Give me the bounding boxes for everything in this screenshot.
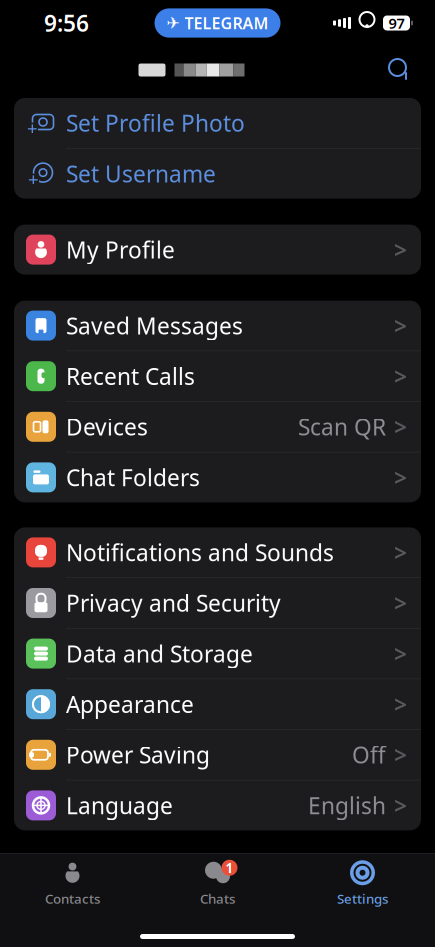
staticText: + [28,167,39,191]
staticText: 1 [225,859,233,877]
staticText: Settings [337,890,388,907]
button[interactable]: Privacy and Security [14,578,421,629]
staticText: > [394,790,407,820]
staticText: Notifications and Sounds [66,537,334,567]
staticText: Off [352,740,386,770]
staticText: Contacts [45,890,100,907]
staticText: > [394,361,407,391]
staticText: ✈ [166,14,179,32]
staticText: Recent Calls [66,361,195,391]
button[interactable]: Notifications and Sounds [14,527,421,578]
button[interactable]: Contacts [0,852,145,907]
staticText: > [394,234,407,265]
staticText: English [308,790,386,820]
staticText: > [394,689,407,719]
button[interactable]: Saved Messages [14,301,421,351]
staticText: Chat Folders [66,462,200,492]
staticText: Privacy and Security [66,588,281,618]
staticText: > [394,638,407,669]
button[interactable]: Recent Calls [14,351,421,402]
button[interactable]: Power Saving [14,730,421,780]
staticText: My Profile [66,234,175,265]
button[interactable]: + [14,98,421,149]
staticText: Set Username [66,158,216,189]
staticText: Data and Storage [66,638,253,669]
button[interactable]: Language [14,780,421,830]
staticText: Language [66,790,173,820]
staticText: Saved Messages [66,310,243,341]
staticText: Appearance [66,689,194,719]
staticText: > [394,740,407,770]
staticText: Set Profile Photo [66,108,245,138]
staticText: Chats [200,890,235,907]
staticText: 97 [388,13,404,33]
button[interactable]: + [14,149,421,199]
staticText: + [27,116,38,140]
button[interactable]: Data and Storage [14,629,421,679]
staticText: > [394,588,407,618]
button[interactable]: Devices [14,402,421,452]
button[interactable]: Chat Folders [14,452,421,502]
staticText: 9:56 [44,8,89,38]
button[interactable]: Search [383,53,417,87]
staticText: > [394,310,407,341]
button[interactable]: Appearance [14,679,421,730]
staticText: TELEGRAM [184,12,268,34]
button[interactable]: Settings [290,852,435,907]
staticText: Devices [66,412,148,442]
staticText: Scan QR [298,412,386,442]
staticText: > [394,412,407,442]
staticText: > [394,537,407,567]
button[interactable]: My Profile [14,225,421,275]
button[interactable]: 1 [145,852,290,907]
staticText: > [394,462,407,492]
staticText: Power Saving [66,740,210,770]
